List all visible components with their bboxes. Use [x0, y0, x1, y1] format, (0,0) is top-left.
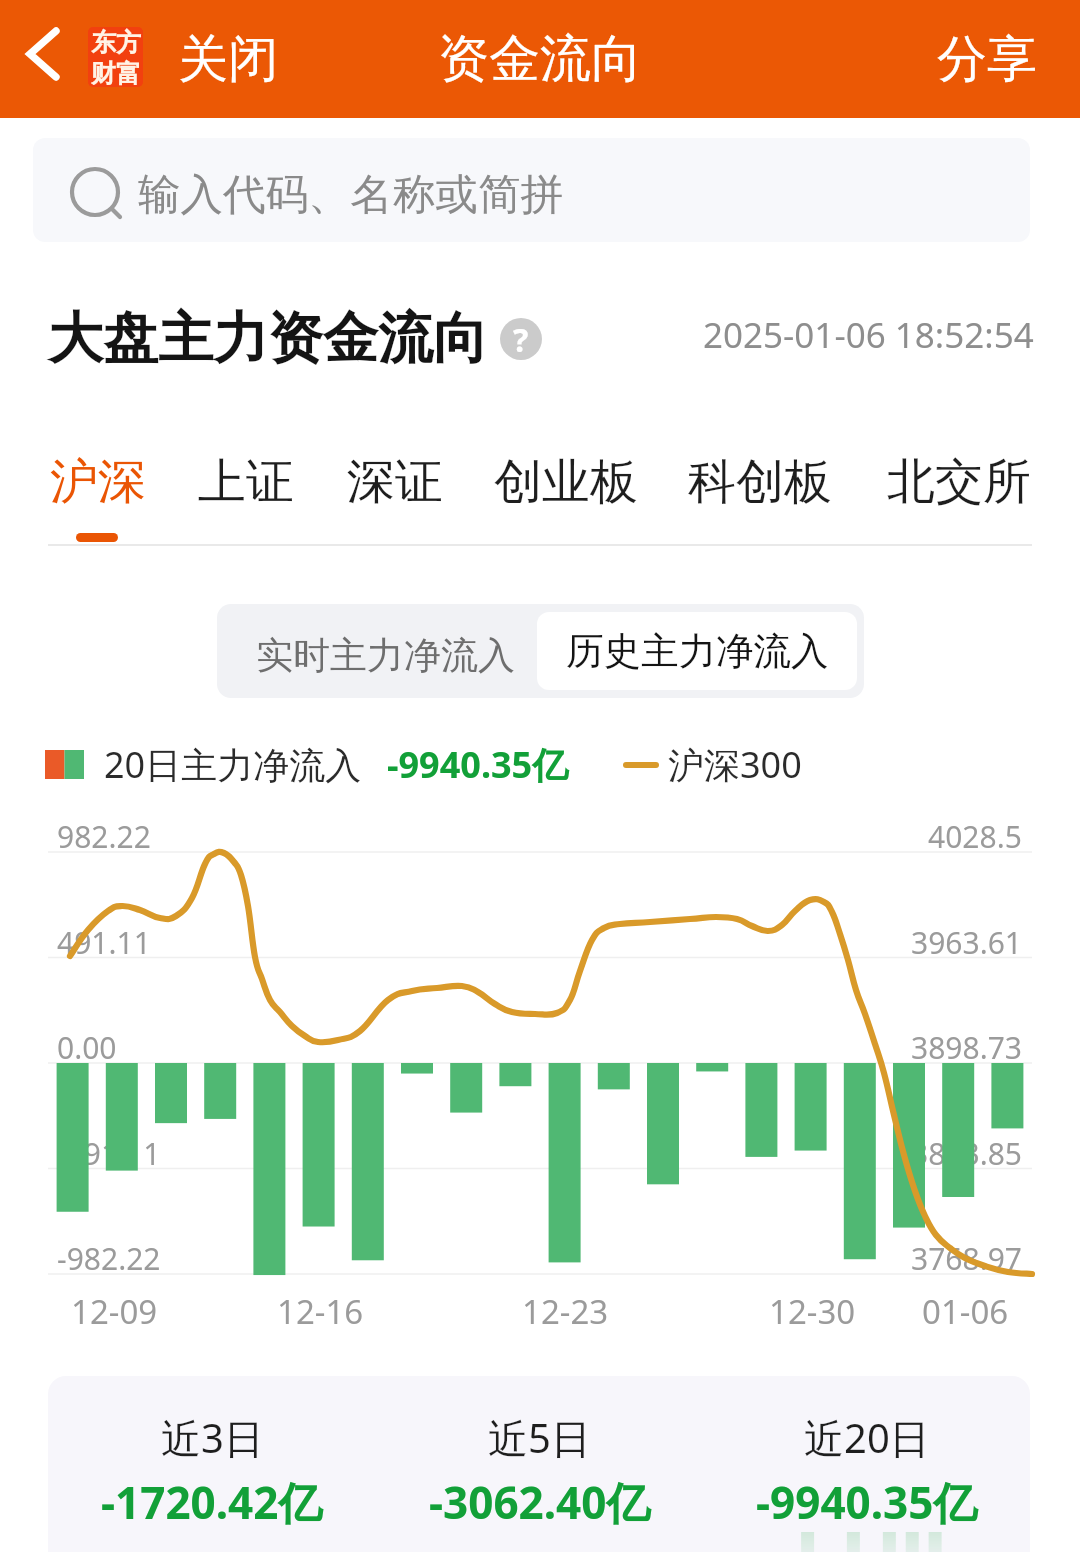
staticText: 输入代码、名称或简拼 — [138, 168, 563, 222]
staticText: 4028.5 — [928, 816, 1022, 857]
staticText: ? — [513, 318, 529, 360]
staticText: 东方 — [91, 27, 141, 58]
staticText: 491.11 — [57, 922, 151, 963]
staticText: 2025-01-06 18:52:54 — [703, 311, 1034, 359]
button[interactable]: 近5日 — [376, 1376, 703, 1532]
staticText: 大盘主力资金流向 — [48, 304, 488, 373]
staticText: 3963.61 — [911, 922, 1022, 963]
staticText: 近3日 — [161, 1410, 264, 1465]
staticText: 分享 — [937, 28, 1037, 91]
staticText: 20日主力净流入 — [104, 740, 362, 789]
staticText: 北交所 — [887, 452, 1031, 512]
button[interactable]: 实时主力净流入 — [225, 608, 545, 698]
button[interactable]: 上证 — [183, 446, 309, 518]
staticText: 12-23 — [522, 1289, 609, 1334]
staticText: 3833.85 — [911, 1133, 1022, 1174]
staticText: 0.00 — [57, 1027, 117, 1068]
staticText: 近20日 — [804, 1410, 930, 1465]
staticText: 3898.73 — [911, 1027, 1022, 1068]
staticText: 982.22 — [57, 816, 151, 857]
staticText: 历史主力净流入 — [566, 628, 829, 675]
staticText: -9940.35亿 — [756, 1472, 978, 1532]
button[interactable]: Back — [4, 19, 82, 99]
staticText: 资金流向 — [438, 27, 642, 91]
button[interactable]: 深证 — [332, 446, 457, 518]
button[interactable]: Help — [500, 318, 542, 360]
button[interactable]: 输入代码、名称或简拼 — [33, 138, 1030, 242]
staticText: 沪深 — [50, 452, 146, 512]
button[interactable]: 分享 — [929, 20, 1045, 99]
button[interactable]: 关闭 — [170, 20, 286, 99]
staticText: 沪深300 — [668, 740, 802, 789]
staticText: 3768.97 — [911, 1238, 1022, 1279]
staticText: 关闭 — [178, 28, 278, 91]
button[interactable]: 科创板 — [674, 446, 846, 518]
button[interactable]: 近20日 — [703, 1376, 1030, 1552]
staticText: -491.11 — [57, 1133, 161, 1174]
staticText: -3062.40亿 — [429, 1472, 651, 1532]
button[interactable]: 沪深 — [37, 446, 158, 518]
staticText: -982.22 — [57, 1238, 161, 1279]
staticText: 12-09 — [71, 1289, 158, 1334]
button[interactable]: 历史主力净流入 — [537, 612, 857, 690]
staticText: 12-16 — [277, 1289, 364, 1334]
staticText: 科创板 — [688, 452, 832, 512]
button[interactable]: 近3日 — [48, 1376, 376, 1532]
staticText: 创业板 — [494, 452, 638, 512]
button[interactable]: 北交所 — [873, 446, 1044, 518]
staticText: 近5日 — [488, 1410, 591, 1465]
button[interactable]: East Money logo — [88, 27, 143, 87]
button[interactable]: 创业板 — [480, 446, 651, 518]
staticText: 01-06 — [922, 1289, 1009, 1334]
staticText: 深证 — [347, 452, 443, 512]
staticText: 实时主力净流入 — [256, 632, 515, 679]
staticText: 上证 — [198, 452, 294, 512]
staticText: -1720.42亿 — [101, 1472, 323, 1532]
staticText: -9940.35亿 — [387, 740, 569, 789]
staticText: 财富 — [91, 58, 141, 87]
staticText: 12-30 — [769, 1289, 856, 1334]
